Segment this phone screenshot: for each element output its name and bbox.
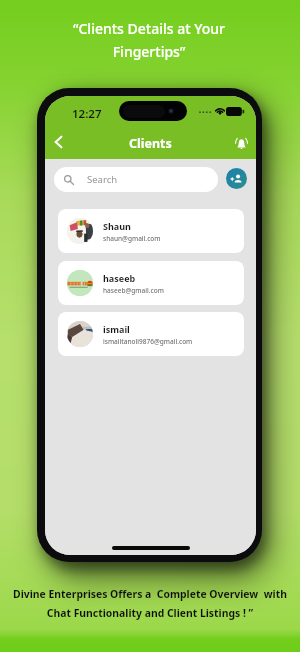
- staticText: ismail: [103, 323, 130, 335]
- button[interactable]: haseeb: [58, 261, 244, 305]
- staticText: Clients: [129, 135, 172, 152]
- staticText: Shaun: [103, 220, 131, 232]
- button[interactable]: Shaun: [58, 209, 244, 253]
- button[interactable]: Add client: [226, 168, 247, 189]
- staticText: Search: [87, 173, 118, 186]
- button[interactable]: Search: [54, 167, 218, 192]
- button[interactable]: Notifications: [230, 132, 252, 154]
- staticText: “Clients Details at Your Fingertips”: [73, 19, 225, 61]
- button[interactable]: ismail: [58, 312, 244, 356]
- button[interactable]: Back: [46, 130, 70, 154]
- staticText: ismailtanoli9876@gmail.com: [103, 337, 193, 346]
- staticText: Divine Enterprises Offers a Complete Ove…: [13, 587, 287, 620]
- staticText: shaun@gmail.com: [103, 234, 161, 243]
- staticText: haseeb@gmail.com: [103, 286, 164, 295]
- staticText: haseeb: [103, 272, 136, 284]
- staticText: 12:27: [72, 106, 102, 122]
